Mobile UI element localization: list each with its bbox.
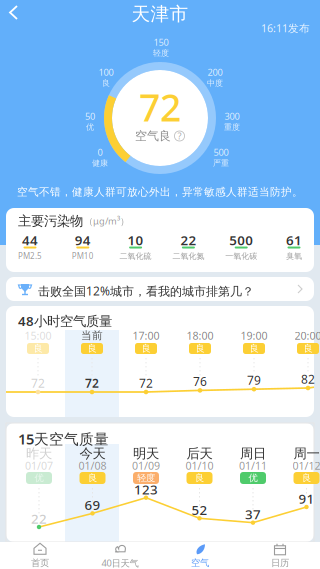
staticText: 空气不错，健康人群可放心外出，异常敏感人群适当防护。: [17, 185, 303, 198]
staticText: 40日天气: [101, 557, 138, 569]
staticText: 72: [85, 375, 99, 391]
staticText: 01/09: [132, 458, 160, 473]
staticText: 天津市: [131, 2, 188, 25]
staticText: 82: [301, 371, 315, 387]
staticText: 优: [248, 472, 257, 484]
staticText: 123: [134, 480, 158, 498]
button[interactable]: 首页: [0, 542, 80, 569]
button[interactable]: 日历: [240, 542, 320, 569]
staticText: 良: [302, 472, 311, 484]
staticText: 01/07: [25, 458, 53, 473]
staticText: 22: [180, 231, 196, 249]
staticText: 二氧化硫: [120, 251, 152, 261]
staticText: 79: [247, 372, 261, 388]
staticText: 37: [245, 505, 261, 523]
staticText: 周日: [240, 445, 266, 462]
staticText: 500: [213, 146, 228, 158]
staticText: 良: [87, 343, 96, 354]
staticText: 20:00: [294, 328, 320, 343]
staticText: 18:00: [186, 328, 213, 343]
staticText: 良: [33, 343, 42, 354]
staticText: 44: [22, 231, 38, 249]
staticText: 健康: [92, 158, 108, 168]
staticText: 良: [88, 472, 97, 484]
staticText: 明天: [133, 445, 159, 462]
button[interactable]: 40日天气: [80, 542, 160, 569]
staticText: ?: [177, 130, 181, 142]
staticText: 优: [86, 122, 94, 132]
staticText: 良: [249, 343, 258, 354]
staticText: 01/12: [292, 458, 320, 473]
staticText: 主要污染物: [18, 213, 83, 229]
staticText: 200: [207, 66, 222, 78]
staticText: 61: [286, 231, 302, 249]
staticText: 500: [229, 231, 253, 249]
staticText: （μg/m³）: [84, 215, 129, 227]
staticText: 今天: [79, 445, 105, 462]
staticText: 良: [195, 472, 204, 484]
staticText: PM2.5: [18, 251, 42, 261]
staticText: 重度: [224, 122, 240, 132]
staticText: 01/08: [78, 458, 106, 473]
staticText: PM10: [72, 251, 94, 261]
staticText: 严重: [213, 158, 229, 168]
staticText: 150: [153, 36, 168, 48]
staticText: 二氧化氮: [172, 251, 204, 261]
staticText: 76: [193, 373, 207, 389]
staticText: 昨天: [26, 445, 52, 462]
staticText: 01/11: [239, 458, 267, 473]
staticText: 69: [84, 496, 100, 514]
staticText: 15天空气质量: [18, 429, 109, 448]
button[interactable]: 空气: [160, 542, 240, 569]
staticText: 10: [128, 231, 144, 249]
staticText: 良: [102, 78, 110, 88]
staticText: 日历: [271, 557, 289, 569]
staticText: 50: [85, 110, 95, 122]
staticText: 100: [98, 66, 113, 78]
staticText: 15:00: [24, 328, 51, 343]
staticText: 首页: [31, 557, 49, 569]
staticText: 当前: [81, 329, 103, 342]
staticText: 一氧化碳: [225, 251, 257, 261]
staticText: 优: [34, 472, 43, 484]
staticText: 良: [303, 343, 312, 354]
staticText: 300: [224, 110, 239, 122]
staticText: 后天: [186, 445, 212, 462]
staticText: 52: [191, 501, 207, 519]
staticText: 空气: [191, 557, 209, 569]
staticText: 16:11发布: [261, 21, 310, 35]
staticText: 击败全国12%城市，看我的城市排第几？: [38, 283, 254, 299]
staticText: 臭氧: [286, 251, 302, 261]
staticText: 0: [97, 146, 102, 158]
staticText: 轻度: [153, 48, 169, 58]
staticText: 94: [75, 231, 91, 249]
staticText: 17:00: [132, 328, 159, 343]
staticText: 72: [31, 375, 45, 391]
staticText: 中度: [207, 78, 223, 88]
staticText: 72: [139, 375, 153, 391]
staticText: 19:00: [240, 328, 267, 343]
staticText: 空气良: [135, 129, 171, 143]
staticText: 01/10: [185, 458, 213, 473]
staticText: 轻度: [137, 472, 155, 484]
staticText: 91: [298, 490, 314, 507]
staticText: 周一: [293, 445, 319, 462]
staticText: 良: [195, 343, 204, 354]
button[interactable]: Back: [0, 0, 34, 28]
button[interactable]: 击败全国12%城市，看我的城市排第几？: [6, 277, 314, 301]
staticText: 48小时空气质量: [18, 312, 112, 330]
staticText: 良: [141, 343, 150, 354]
staticText: 22: [31, 510, 47, 527]
staticText: 72: [139, 82, 181, 132]
